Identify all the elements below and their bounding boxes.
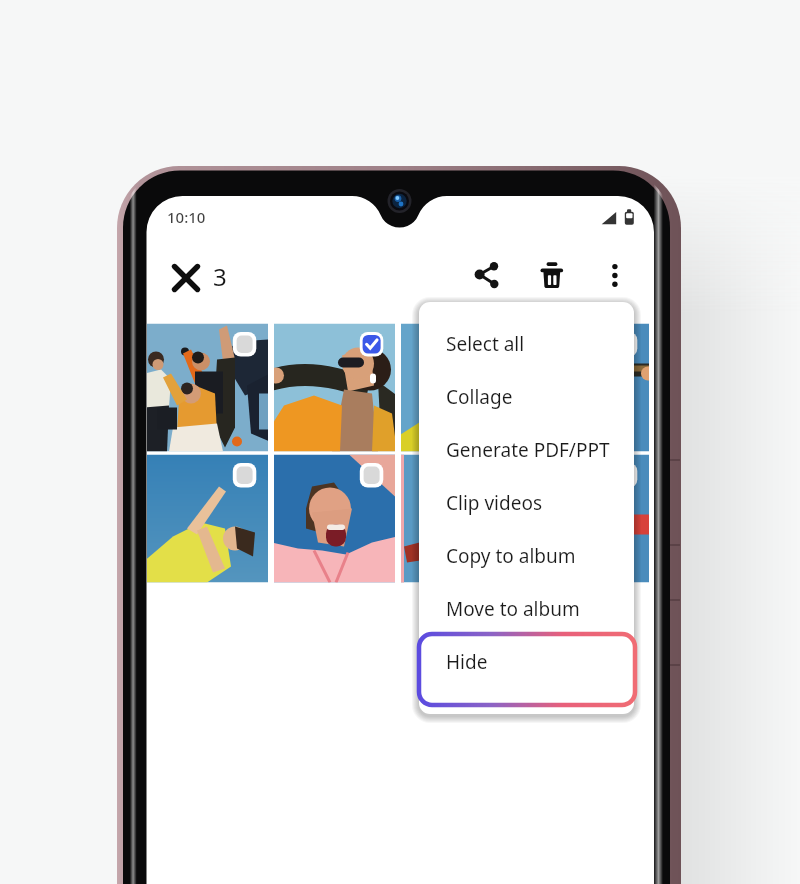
button[interactable]: Photo 5 — [147, 455, 268, 583]
button[interactable]: Copy to album — [419, 529, 634, 582]
button[interactable]: Share — [464, 254, 508, 298]
staticText: Hide — [446, 649, 488, 675]
button[interactable]: Clip videos — [419, 476, 634, 529]
button[interactable]: Move to album — [419, 582, 634, 635]
staticText: Select all — [446, 331, 525, 357]
button[interactable]: More options — [594, 254, 638, 298]
button[interactable]: Delete — [530, 254, 574, 298]
button[interactable]: Photo 3 — [401, 324, 522, 452]
button[interactable]: Photo 7 — [401, 455, 522, 583]
button[interactable]: Hide — [419, 635, 634, 688]
button[interactable]: Photo 1 — [147, 324, 268, 452]
staticText: Clip videos — [446, 490, 542, 516]
staticText: 10:10 — [167, 207, 206, 227]
button[interactable]: Photo 2 — [274, 324, 395, 452]
button[interactable]: Select all — [419, 317, 634, 370]
staticText: 3 — [213, 260, 227, 293]
staticText: Move to album — [446, 596, 580, 622]
staticText: Generate PDF/PPT — [446, 437, 610, 463]
button[interactable]: Generate PDF/PPT — [419, 423, 634, 476]
button[interactable]: Close — [162, 254, 206, 298]
button[interactable]: Photo 4 — [528, 324, 649, 452]
button[interactable]: Collage — [419, 370, 634, 423]
button[interactable]: Photo 8 — [528, 455, 649, 583]
staticText: Collage — [446, 384, 513, 410]
button[interactable]: Photo 6 — [274, 455, 395, 583]
staticText: Copy to album — [446, 543, 576, 569]
